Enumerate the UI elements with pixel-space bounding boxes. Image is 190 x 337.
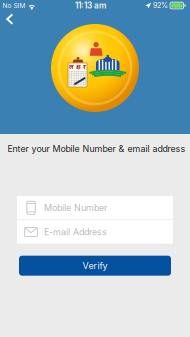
button[interactable]: Verify — [19, 256, 171, 276]
staticText: 11:13 am — [75, 0, 106, 10]
staticText: Verify — [82, 260, 107, 271]
button[interactable]: Back — [0, 11, 22, 27]
staticText: 92% — [153, 1, 168, 10]
staticText: Enter your Mobile Number & email address — [7, 143, 185, 154]
staticText: Mobile Number — [44, 202, 107, 213]
staticText: No SIM — [3, 1, 26, 9]
staticText: ल क्ष र — [69, 62, 86, 71]
staticText: E-mail Address — [44, 226, 107, 237]
